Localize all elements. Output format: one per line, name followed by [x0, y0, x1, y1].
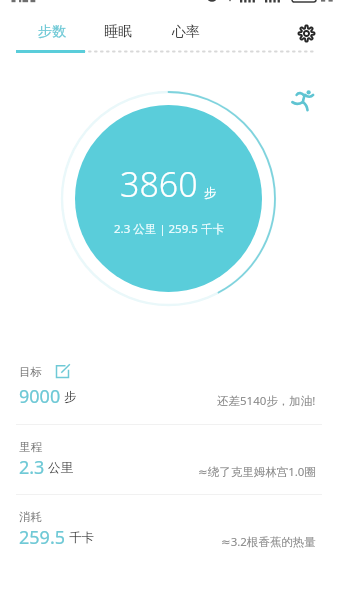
staticText: 公里	[48, 460, 73, 476]
staticText: ≈绕了克里姆林宫1.0圈	[198, 464, 316, 480]
button[interactable]: Settings	[282, 16, 330, 50]
button[interactable]: 消耗	[0, 494, 337, 564]
button[interactable]: 里程	[0, 424, 337, 494]
button[interactable]: Running activity	[291, 88, 316, 113]
staticText: 睡眠	[104, 23, 132, 41]
staticText: 千卡	[69, 530, 94, 546]
button[interactable]: 步数	[14, 16, 89, 48]
staticText: 步	[204, 185, 217, 201]
staticText: 2.3	[19, 455, 45, 480]
staticText: 里程	[19, 440, 42, 454]
button[interactable]: 目标	[0, 348, 337, 424]
staticText: 消耗	[19, 510, 42, 524]
staticText: 目标	[19, 365, 42, 379]
button[interactable]: 睡眠	[85, 16, 151, 48]
staticText: ≈3.2根香蕉的热量	[221, 534, 316, 550]
staticText: 步	[64, 389, 77, 405]
staticText: 步数	[38, 23, 66, 41]
staticText: 259.5	[19, 525, 66, 550]
staticText: 还差5140步，加油!	[217, 393, 316, 409]
staticText: 2.3 公里 | 259.5 千卡	[114, 221, 224, 237]
button[interactable]: 心率	[151, 16, 221, 48]
staticText: 心率	[172, 23, 200, 41]
staticText: 9000	[19, 384, 61, 409]
staticText: 3860	[120, 161, 198, 207]
